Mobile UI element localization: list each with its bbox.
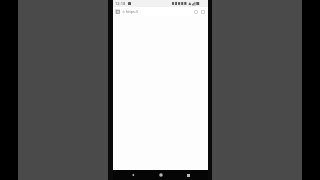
button[interactable]: Reload [193,9,199,15]
button[interactable]: Page info [115,9,120,14]
staticText: 12:18 [115,1,126,6]
button[interactable]: Home [153,170,169,180]
button[interactable]: Recent apps [180,170,196,180]
button[interactable]: More options [200,9,206,15]
button[interactable]: Back [125,170,141,180]
staticText: https://m.hl2.pw.test/comic/sh820 [126,9,159,14]
button[interactable]: Page info [113,7,208,16]
